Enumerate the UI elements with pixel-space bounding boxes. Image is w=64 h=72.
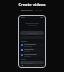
button[interactable]: Tab 3 [33, 64, 38, 67]
button[interactable] [20, 31, 44, 35]
button[interactable]: Tab 4 [39, 64, 44, 67]
button[interactable] [20, 61, 44, 64]
button[interactable]: Tab 2 [26, 64, 31, 67]
button[interactable] [20, 53, 44, 57]
button[interactable] [20, 43, 44, 47]
staticText: generating [21, 9, 33, 12]
button[interactable]: Tab 1 [20, 64, 25, 67]
staticText: scenes [35, 9, 43, 12]
button[interactable] [20, 48, 44, 52]
staticText: Create videos [0, 2, 64, 7]
button[interactable] [20, 19, 44, 30]
